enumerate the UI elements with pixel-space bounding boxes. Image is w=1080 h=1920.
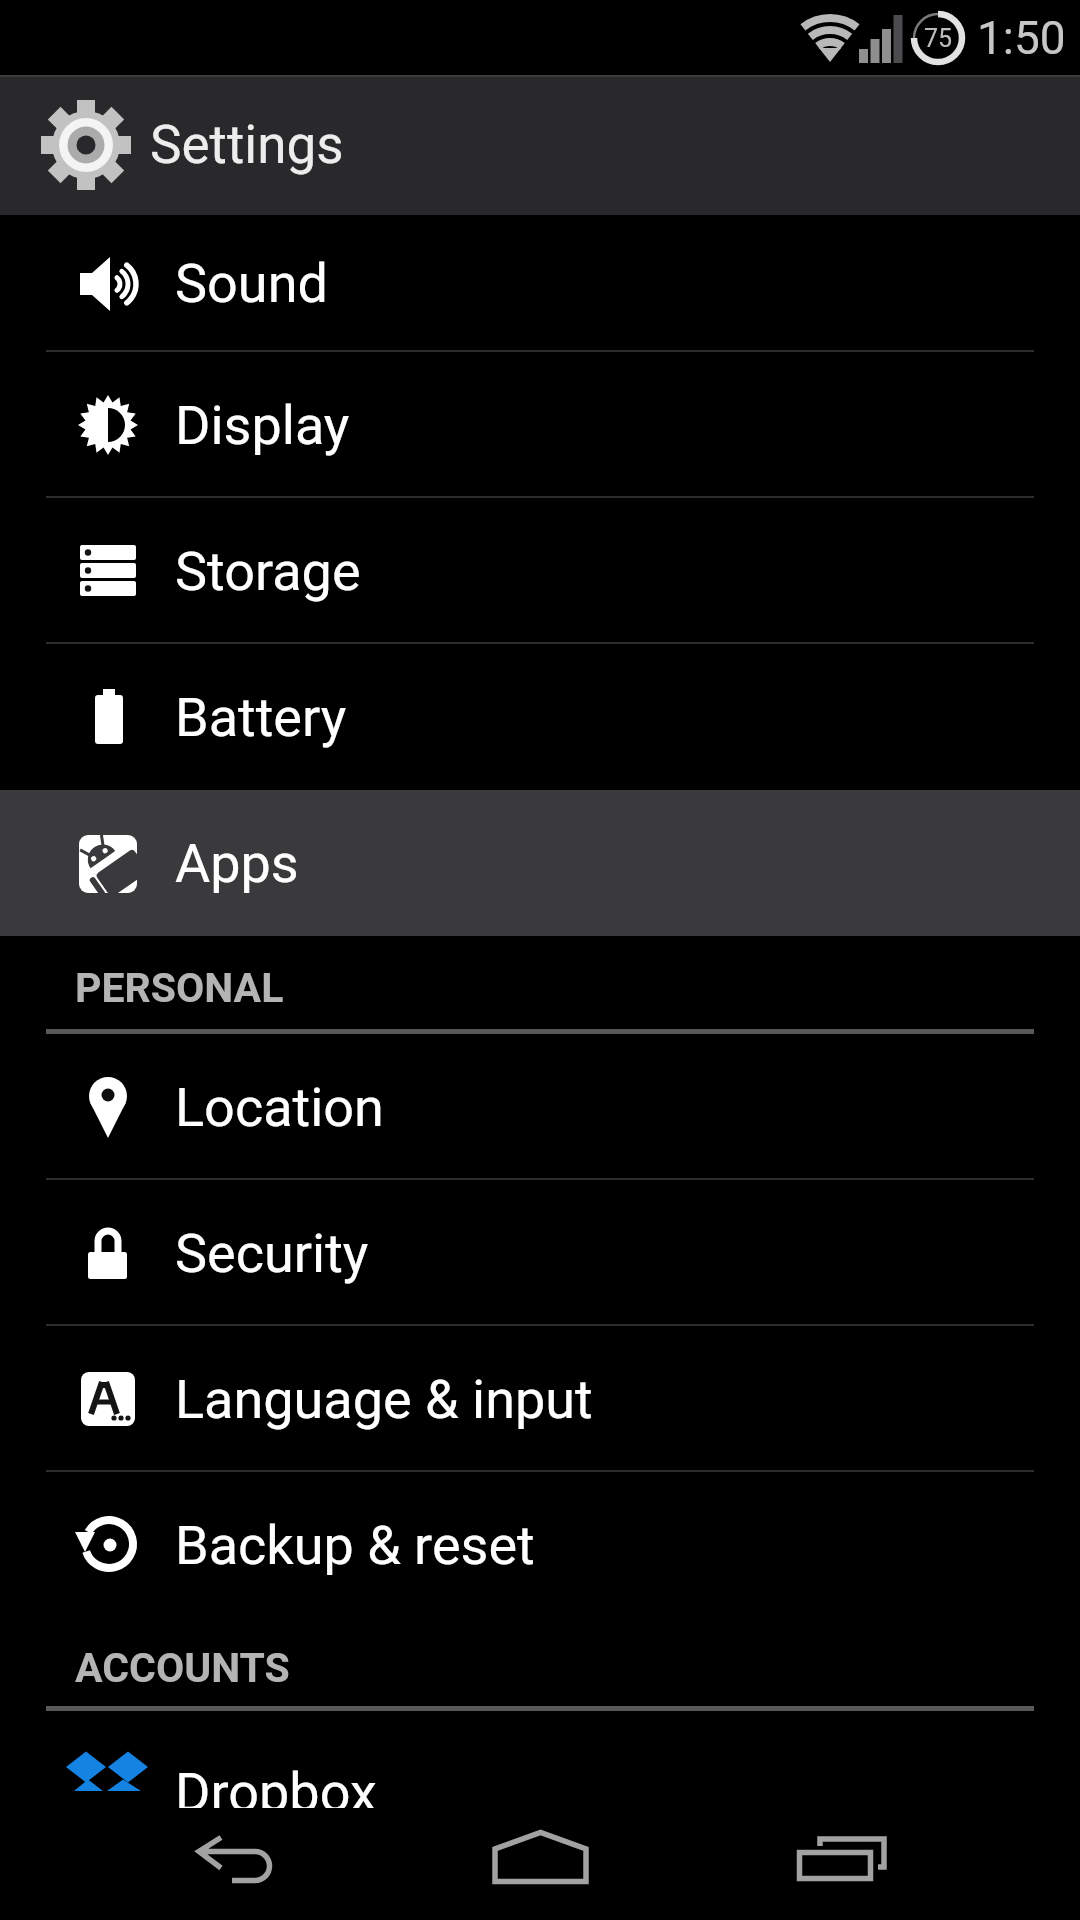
staticText: Display [175, 394, 350, 457]
button[interactable]: Settings [0, 75, 1080, 215]
staticText: Security [175, 1222, 369, 1285]
button[interactable]: Language & input [0, 1326, 1080, 1472]
staticText: Sound [175, 252, 328, 315]
button[interactable]: Storage [0, 498, 1080, 644]
button[interactable]: Display [0, 352, 1080, 498]
staticText: Apps [175, 832, 299, 895]
staticText: 75 [924, 24, 953, 53]
button[interactable] [740, 1808, 940, 1920]
button[interactable]: Battery [0, 644, 1080, 790]
staticText: PERSONAL [75, 964, 284, 1012]
button[interactable]: Dropbox [0, 1711, 1080, 1808]
staticText: Backup & reset [175, 1514, 535, 1577]
button[interactable] [440, 1808, 640, 1920]
staticText: Settings [150, 114, 344, 176]
staticText: Dropbox [175, 1761, 377, 1808]
button[interactable]: Backup & reset [0, 1472, 1080, 1618]
staticText: 1:50 [977, 11, 1066, 65]
button[interactable] [140, 1808, 340, 1920]
button[interactable]: Sound [0, 215, 1080, 352]
staticText: ACCOUNTS [75, 1644, 290, 1692]
button[interactable]: Security [0, 1180, 1080, 1326]
button[interactable]: Apps [0, 790, 1080, 936]
staticText: Location [175, 1076, 384, 1139]
staticText: Battery [175, 686, 347, 749]
staticText: Storage [175, 540, 361, 603]
staticText: Language & input [175, 1368, 593, 1431]
button[interactable]: Location [0, 1034, 1080, 1180]
